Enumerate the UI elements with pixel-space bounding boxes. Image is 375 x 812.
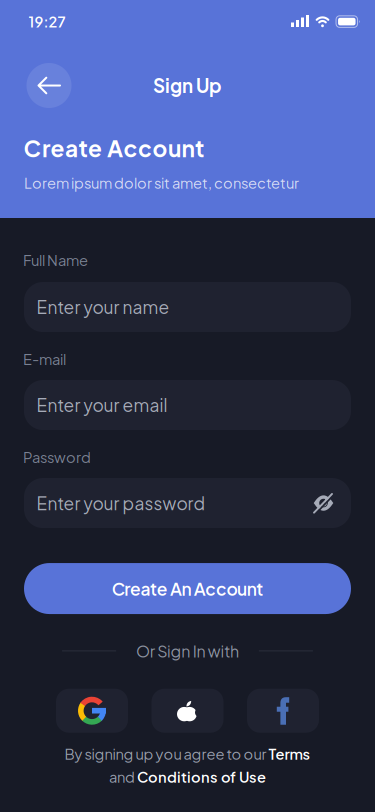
staticText: Terms xyxy=(268,745,310,763)
staticText: Create An Account xyxy=(112,578,263,599)
staticText: Enter your name xyxy=(36,296,169,318)
button[interactable]: Conditions of Use xyxy=(137,768,266,786)
staticText: Lorem ipsum dolor sit amet, consectetur xyxy=(24,174,299,192)
staticText: E-mail xyxy=(23,350,66,368)
button[interactable]: Sign in with Apple xyxy=(151,689,223,733)
button[interactable]: Back xyxy=(26,63,71,108)
button[interactable]: Sign in with Google xyxy=(56,689,128,733)
staticText: and xyxy=(109,768,137,786)
button[interactable]: Create An Account xyxy=(24,563,351,614)
staticText: Password xyxy=(23,448,91,466)
staticText: Sign Up xyxy=(153,74,222,97)
button[interactable]: Show password xyxy=(313,493,334,513)
button[interactable]: Sign in with Facebook xyxy=(247,689,319,733)
staticText: Conditions of Use xyxy=(137,768,266,786)
button[interactable]: Enter your password xyxy=(24,478,351,528)
staticText: By signing up you agree to our xyxy=(64,745,268,763)
staticText: Full Name xyxy=(23,251,88,269)
button[interactable]: Enter your email xyxy=(24,380,351,430)
staticText: Create Account xyxy=(23,134,204,162)
staticText: Enter your email xyxy=(36,394,167,416)
staticText: Or Sign In with xyxy=(136,641,239,661)
button[interactable]: Enter your name xyxy=(24,282,351,332)
staticText: Enter your password xyxy=(36,492,205,514)
button[interactable]: Terms xyxy=(268,745,310,763)
staticText: 19:27 xyxy=(28,12,65,30)
